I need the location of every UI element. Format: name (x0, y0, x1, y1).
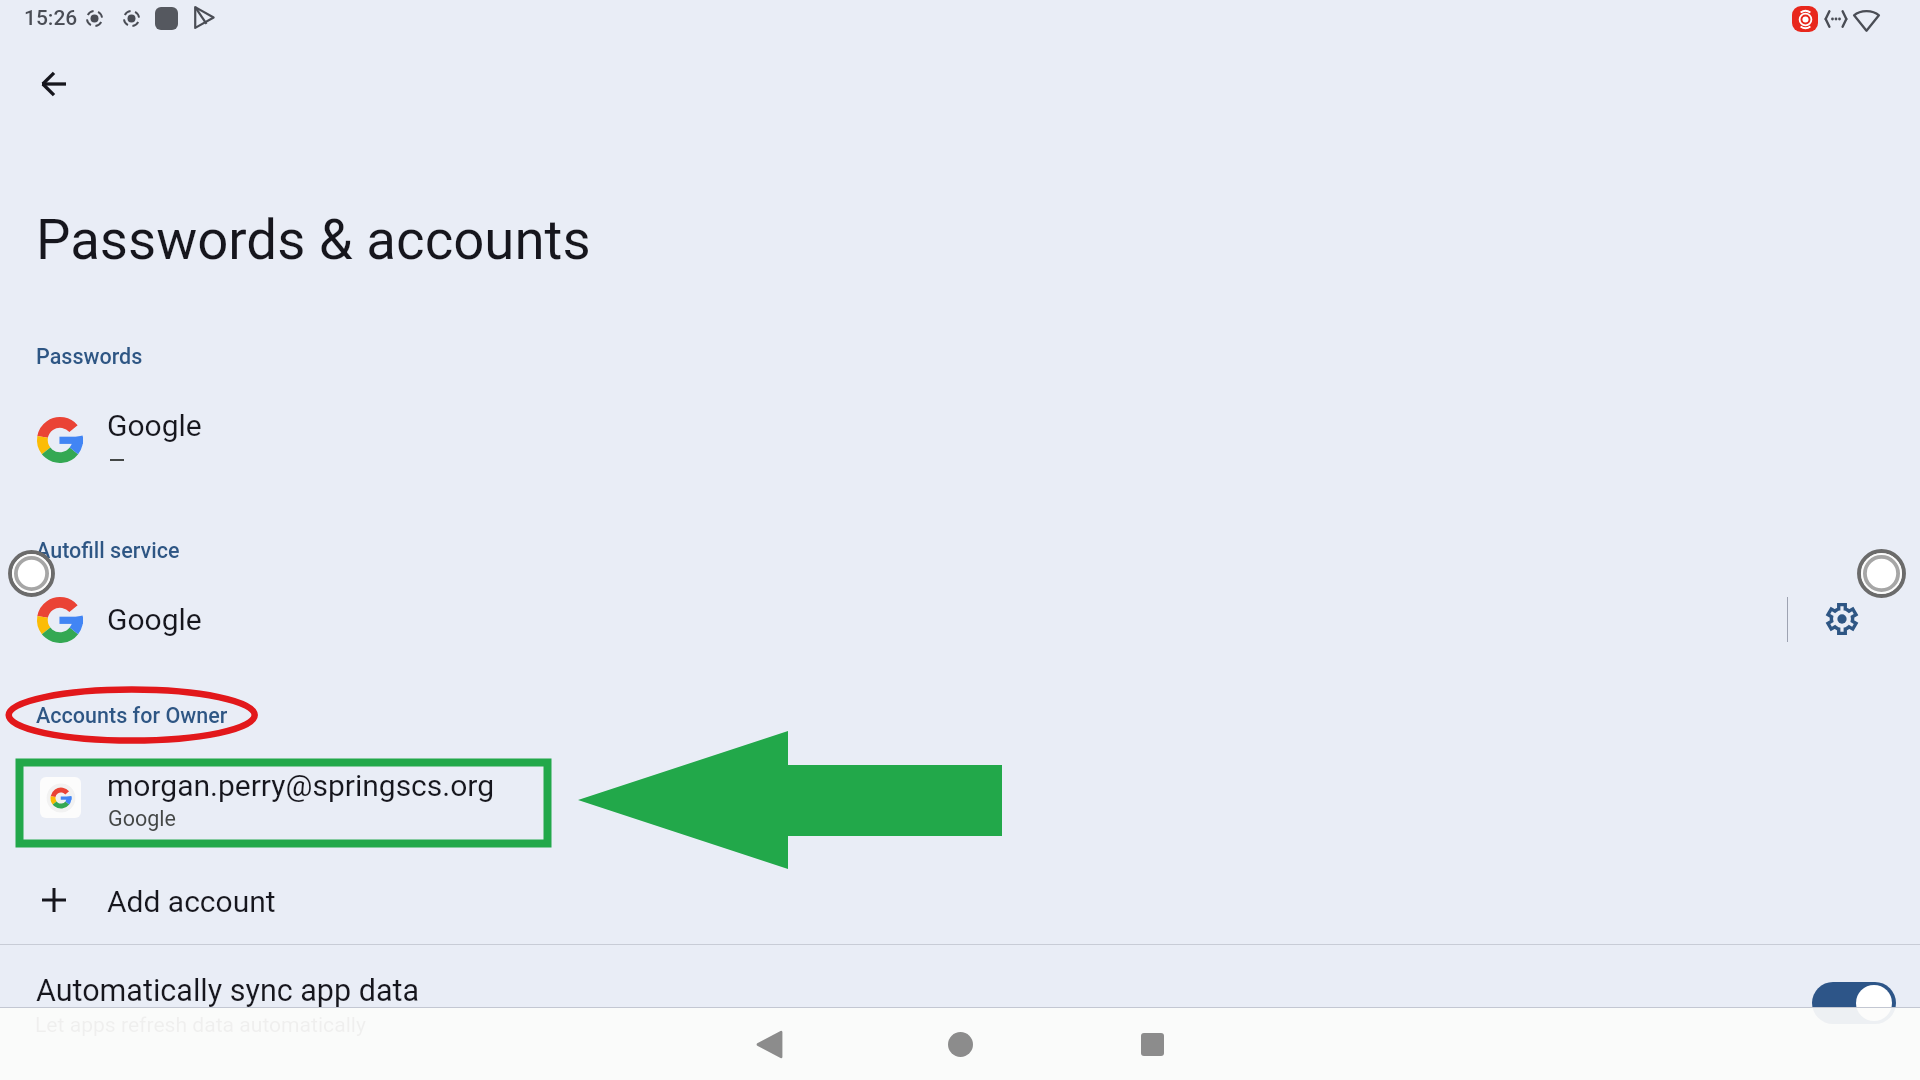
staticText: Automatically sync app data (36, 973, 420, 1009)
staticText: morgan.perry@springscs.org (107, 768, 495, 803)
staticText: Let apps refresh data automatically (35, 1012, 366, 1037)
staticText: Google (107, 602, 202, 637)
button[interactable]: Add account (0, 864, 1920, 936)
staticText: 15:26 (24, 6, 78, 31)
button[interactable]: Automatically sync app data (1812, 982, 1896, 1024)
button[interactable]: Google (0, 394, 1920, 486)
button[interactable]: Google (0, 586, 1770, 654)
button[interactable]: Automatically sync app data (0, 946, 1920, 1056)
staticText: Add account (107, 884, 276, 919)
staticText: Autofill service (36, 538, 180, 563)
staticText: Google (108, 806, 176, 831)
button[interactable]: Overview (1122, 1014, 1182, 1074)
button[interactable]: Navigate up (24, 54, 84, 114)
staticText: Passwords & accounts (36, 208, 591, 272)
button[interactable]: morgan.perry@springscs.org (0, 760, 1920, 846)
button[interactable]: Autofill settings (1810, 587, 1874, 651)
staticText: Accounts for Owner (36, 703, 228, 728)
button[interactable]: Home (930, 1014, 990, 1074)
button[interactable]: Back (739, 1014, 799, 1074)
staticText: Google (107, 408, 202, 443)
staticText: Passwords (36, 344, 143, 369)
